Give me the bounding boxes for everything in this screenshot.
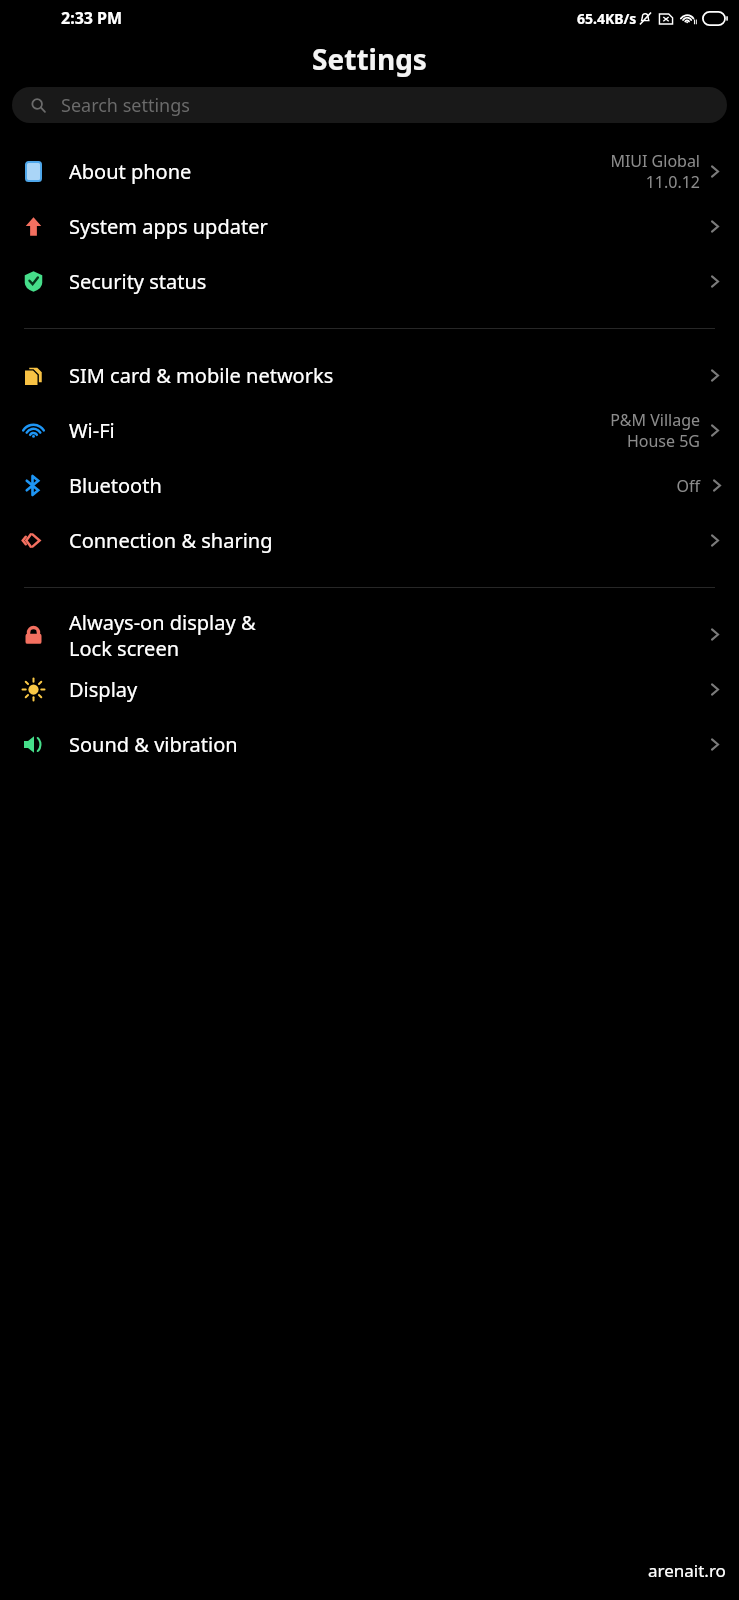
staticText: SIM card & mobile networks <box>69 362 334 389</box>
button[interactable]: Sound & vibration <box>0 717 739 772</box>
staticText: Security status <box>69 268 207 295</box>
button[interactable]: About phone <box>0 144 739 199</box>
button[interactable]: Always-on display & Lock screen <box>0 607 739 662</box>
staticText: P&M Village House 5G <box>610 409 700 452</box>
staticText: MIUI Global 11.0.12 <box>610 150 700 193</box>
button[interactable]: Connection & sharing <box>0 513 739 568</box>
staticText: Sound & vibration <box>69 731 238 758</box>
staticText: Off <box>676 475 700 497</box>
staticText: System apps updater <box>69 213 268 240</box>
button[interactable]: Security status <box>0 254 739 309</box>
button[interactable]: Wi-Fi <box>0 403 739 458</box>
button[interactable]: Bluetooth <box>0 458 739 513</box>
staticText: 2:33 PM <box>61 7 123 29</box>
button[interactable]: System apps updater <box>0 199 739 254</box>
staticText: Always-on display & Lock screen <box>69 609 274 661</box>
staticText: Settings <box>312 40 427 78</box>
staticText: arenait.ro <box>648 1559 726 1582</box>
staticText: Display <box>69 676 138 703</box>
staticText: Search settings <box>61 93 190 118</box>
button[interactable]: Display <box>0 662 739 717</box>
staticText: About phone <box>69 158 192 185</box>
staticText: Bluetooth <box>69 472 162 499</box>
staticText: Wi-Fi <box>69 417 115 444</box>
staticText: Connection & sharing <box>69 527 273 554</box>
staticText: 65.4KB/s <box>577 9 637 28</box>
button[interactable]: SIM card & mobile networks <box>0 348 739 403</box>
button[interactable]: Search settings <box>12 87 727 123</box>
